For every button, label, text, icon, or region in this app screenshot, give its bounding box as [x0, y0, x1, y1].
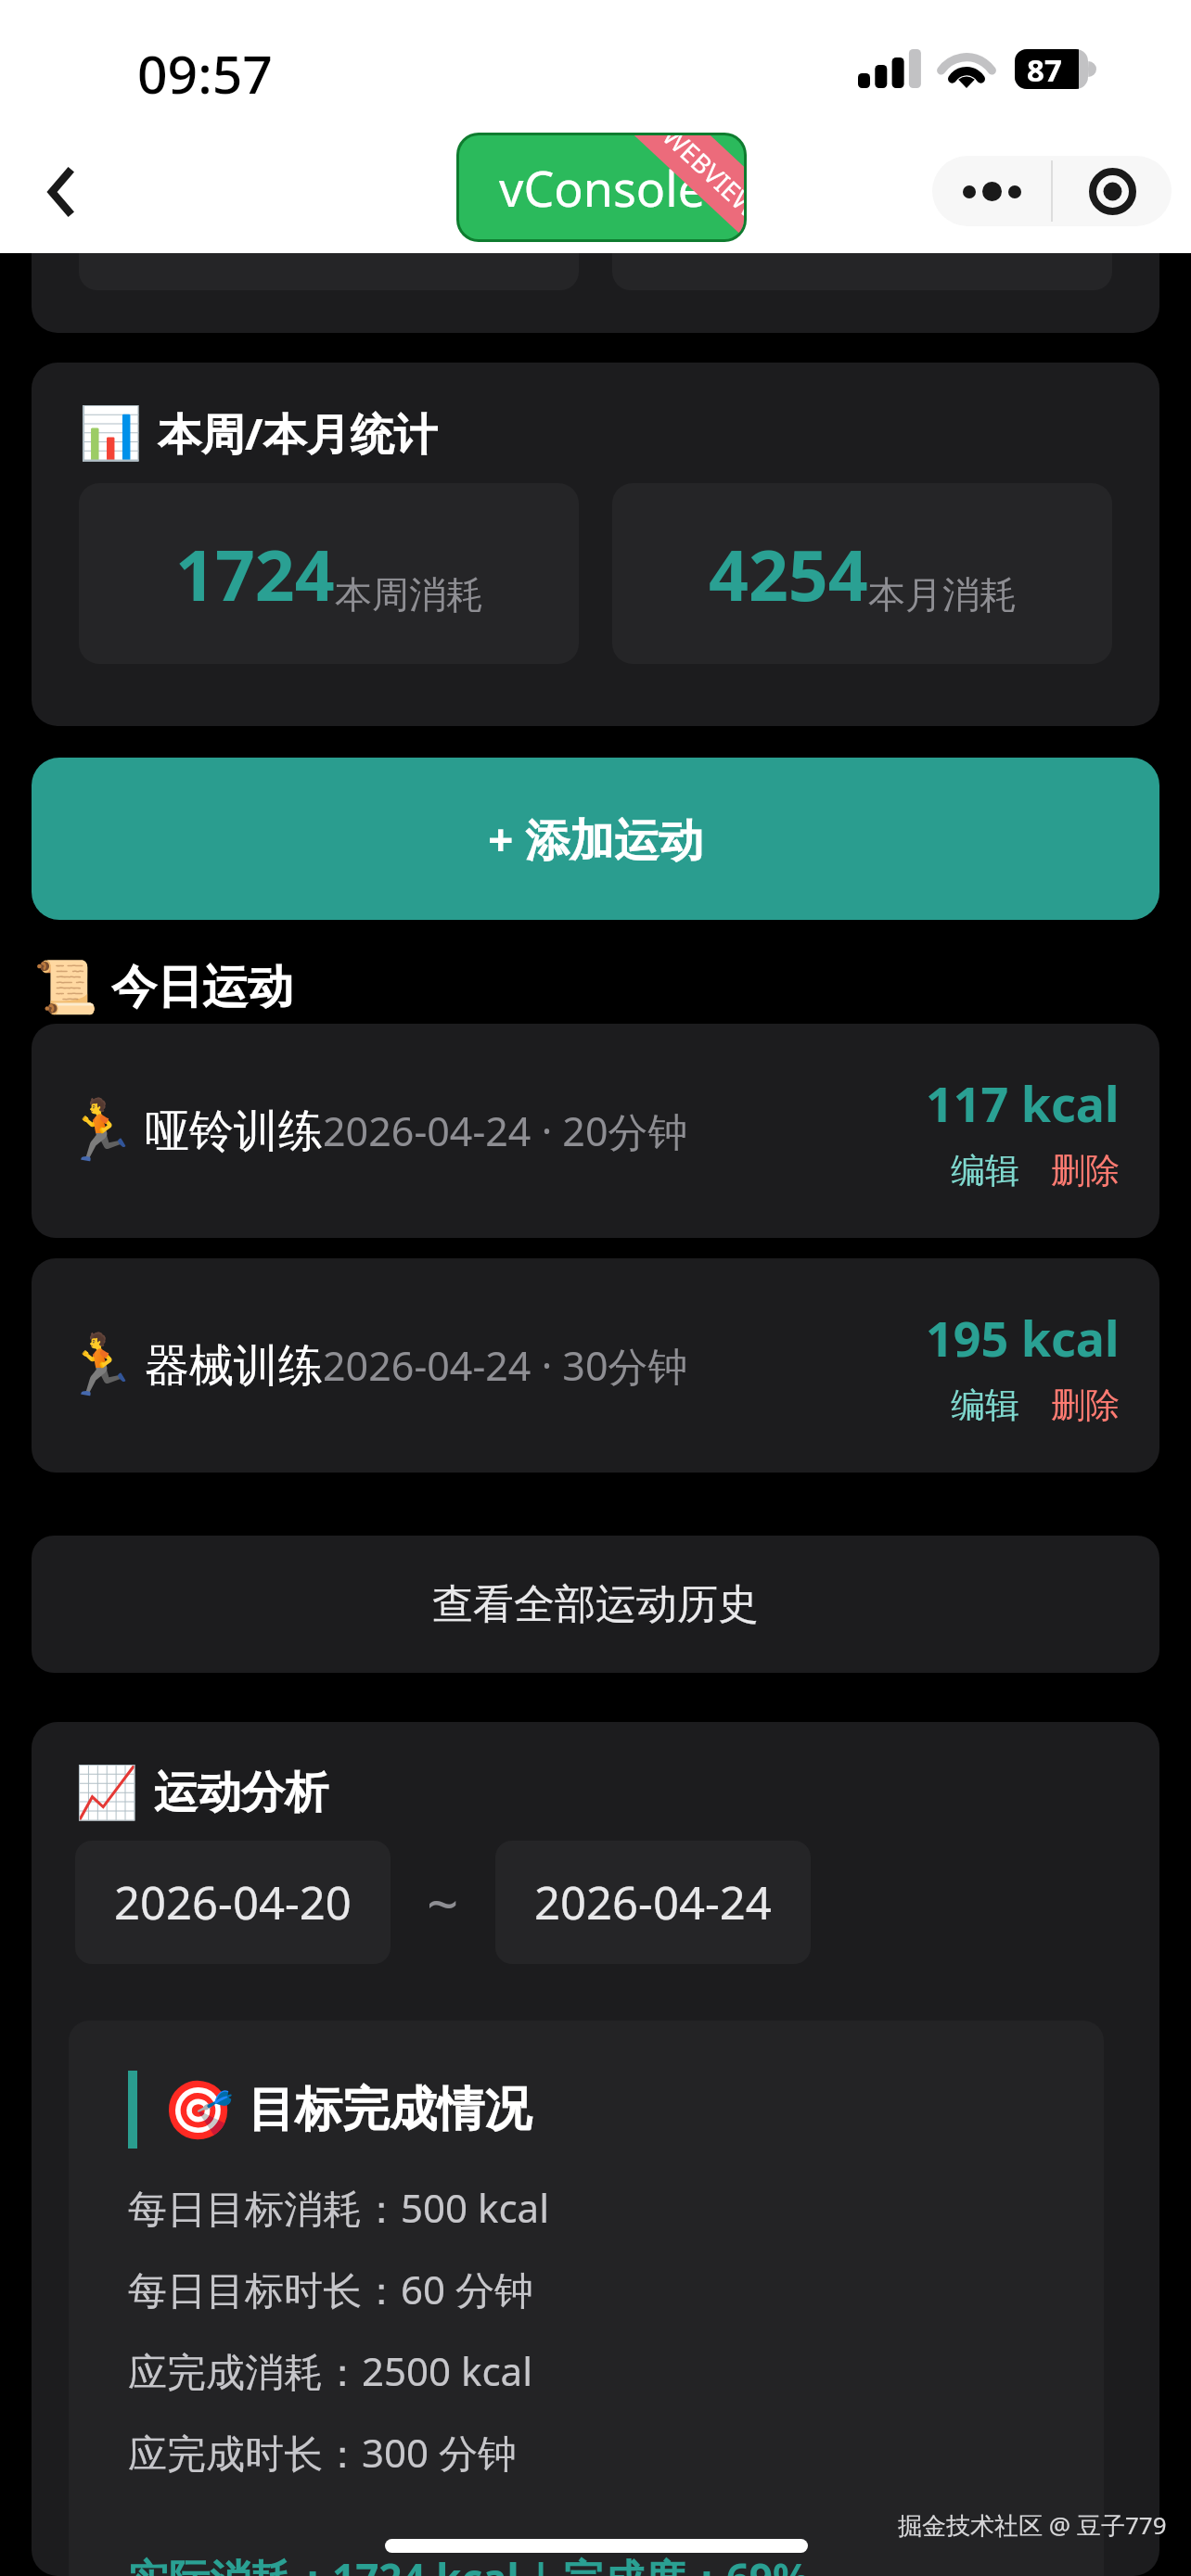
staticText: 2026-04-24 · 20分钟: [323, 1103, 688, 1158]
staticText: 🎯: [162, 2076, 235, 2144]
button[interactable]: 2026-04-20: [75, 1841, 391, 1964]
staticText: 删除: [1051, 1384, 1120, 1427]
staticText: 🏃: [63, 1331, 137, 1400]
staticText: 应完成消耗：2500 kcal: [128, 2344, 533, 2397]
button[interactable]: 查看全部运动历史: [32, 1536, 1159, 1673]
staticText: 117 kcal: [926, 1070, 1120, 1136]
button[interactable]: More options: [932, 156, 1051, 226]
button[interactable]: 2026-04-24: [495, 1841, 811, 1964]
button[interactable]: + 添加运动: [32, 758, 1159, 920]
button[interactable]: Close mini program: [1053, 156, 1172, 226]
staticText: ~: [427, 1865, 459, 1941]
staticText: 09:57: [137, 37, 273, 109]
button[interactable]: 编辑: [951, 1149, 1019, 1192]
button[interactable]: 删除: [1051, 1149, 1120, 1192]
staticText: 删除: [1051, 1149, 1120, 1192]
staticText: 2026-04-24: [534, 1871, 772, 1933]
staticText: 2026-04-24 · 30分钟: [323, 1338, 688, 1393]
staticText: 哑铃训练: [145, 1103, 323, 1159]
staticText: 📊: [79, 403, 143, 463]
staticText: 1724: [175, 527, 335, 621]
staticText: vConsole: [499, 155, 705, 221]
staticText: 2026-04-20: [114, 1871, 352, 1933]
staticText: 📈: [75, 1763, 139, 1822]
staticText: 掘金技术社区 @ 豆子779: [898, 2508, 1167, 2542]
staticText: 每日目标时长：60 分钟: [128, 2263, 533, 2315]
staticText: 本月消耗: [868, 571, 1017, 618]
staticText: 本周/本月统计: [158, 403, 438, 463]
staticText: 查看全部运动历史: [432, 1579, 759, 1630]
staticText: 运动分析: [154, 1766, 328, 1820]
staticText: 📜: [33, 957, 98, 1018]
staticText: 编辑: [951, 1384, 1019, 1427]
button[interactable]: vConsole: [459, 135, 744, 239]
button[interactable]: Back: [18, 149, 103, 235]
button[interactable]: 🏃: [32, 1258, 1159, 1473]
staticText: 4254: [709, 527, 868, 621]
staticText: 器械训练: [145, 1338, 323, 1394]
button[interactable]: 🏃: [32, 1024, 1159, 1238]
staticText: 87: [1027, 49, 1062, 89]
staticText: + 添加运动: [488, 809, 703, 870]
staticText: 🏃: [63, 1096, 137, 1166]
staticText: 实际消耗：1724 kcal | 完成度：69%: [128, 2550, 810, 2576]
staticText: 目标完成情况: [248, 2080, 531, 2139]
staticText: 195 kcal: [926, 1305, 1120, 1371]
staticText: 应完成时长：300 分钟: [128, 2426, 517, 2479]
staticText: 今日运动: [111, 959, 293, 1016]
staticText: 编辑: [951, 1149, 1019, 1192]
staticText: 每日目标消耗：500 kcal: [128, 2181, 549, 2234]
button[interactable]: 删除: [1051, 1384, 1120, 1427]
button[interactable]: 编辑: [951, 1384, 1019, 1427]
staticText: WEBVIEW: [656, 135, 744, 225]
staticText: 本周消耗: [335, 571, 483, 618]
